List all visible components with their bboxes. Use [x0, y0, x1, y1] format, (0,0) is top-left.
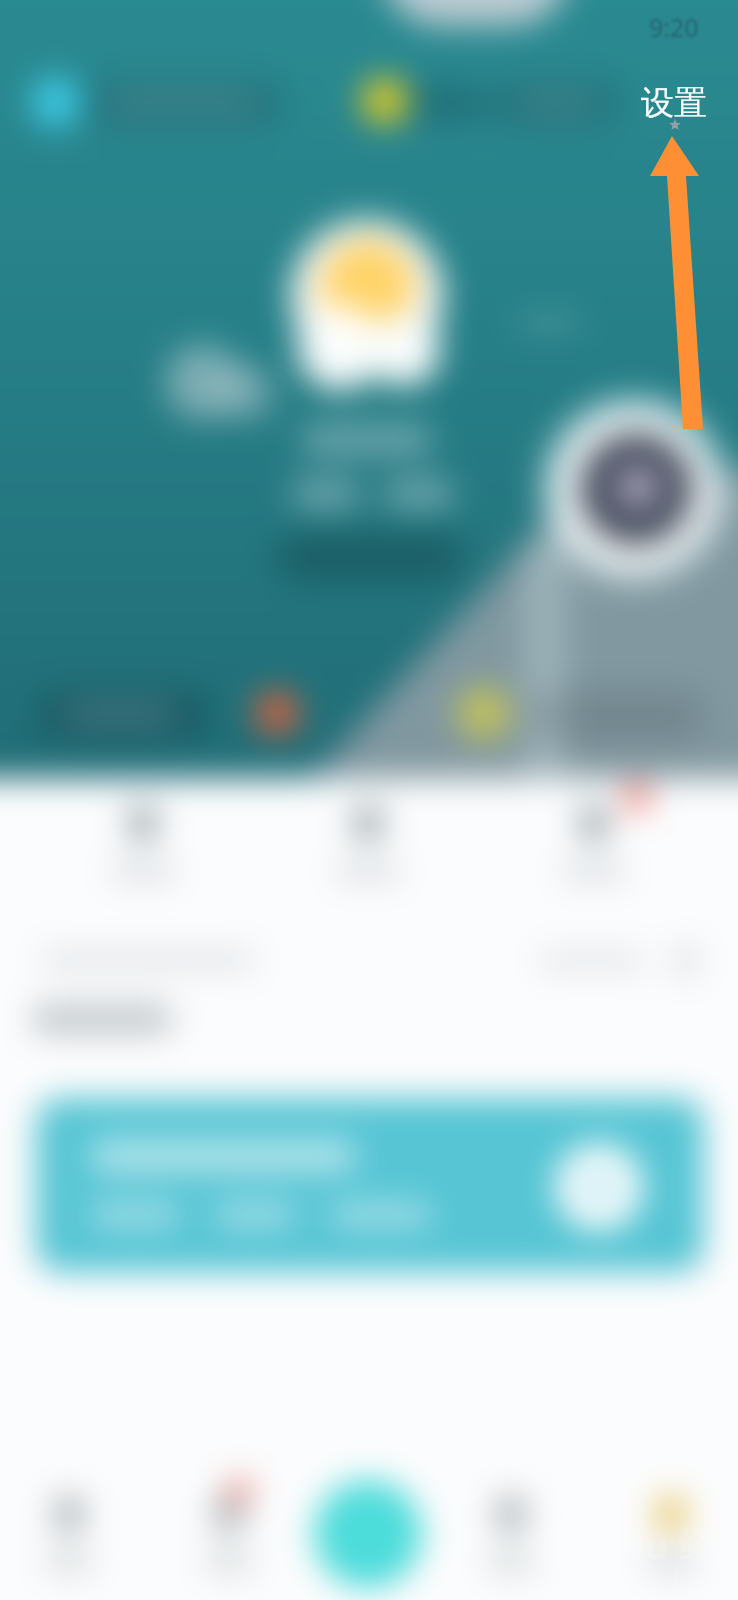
button[interactable]: 设置: [641, 82, 707, 124]
other: Settings pointer: [0, 0, 738, 1600]
staticText: 9:20: [649, 10, 699, 44]
staticText: 设置: [641, 82, 707, 124]
staticText: Baidu 经验: [566, 1521, 738, 1570]
staticText: jingyan.baidu.com: [566, 1559, 738, 1589]
